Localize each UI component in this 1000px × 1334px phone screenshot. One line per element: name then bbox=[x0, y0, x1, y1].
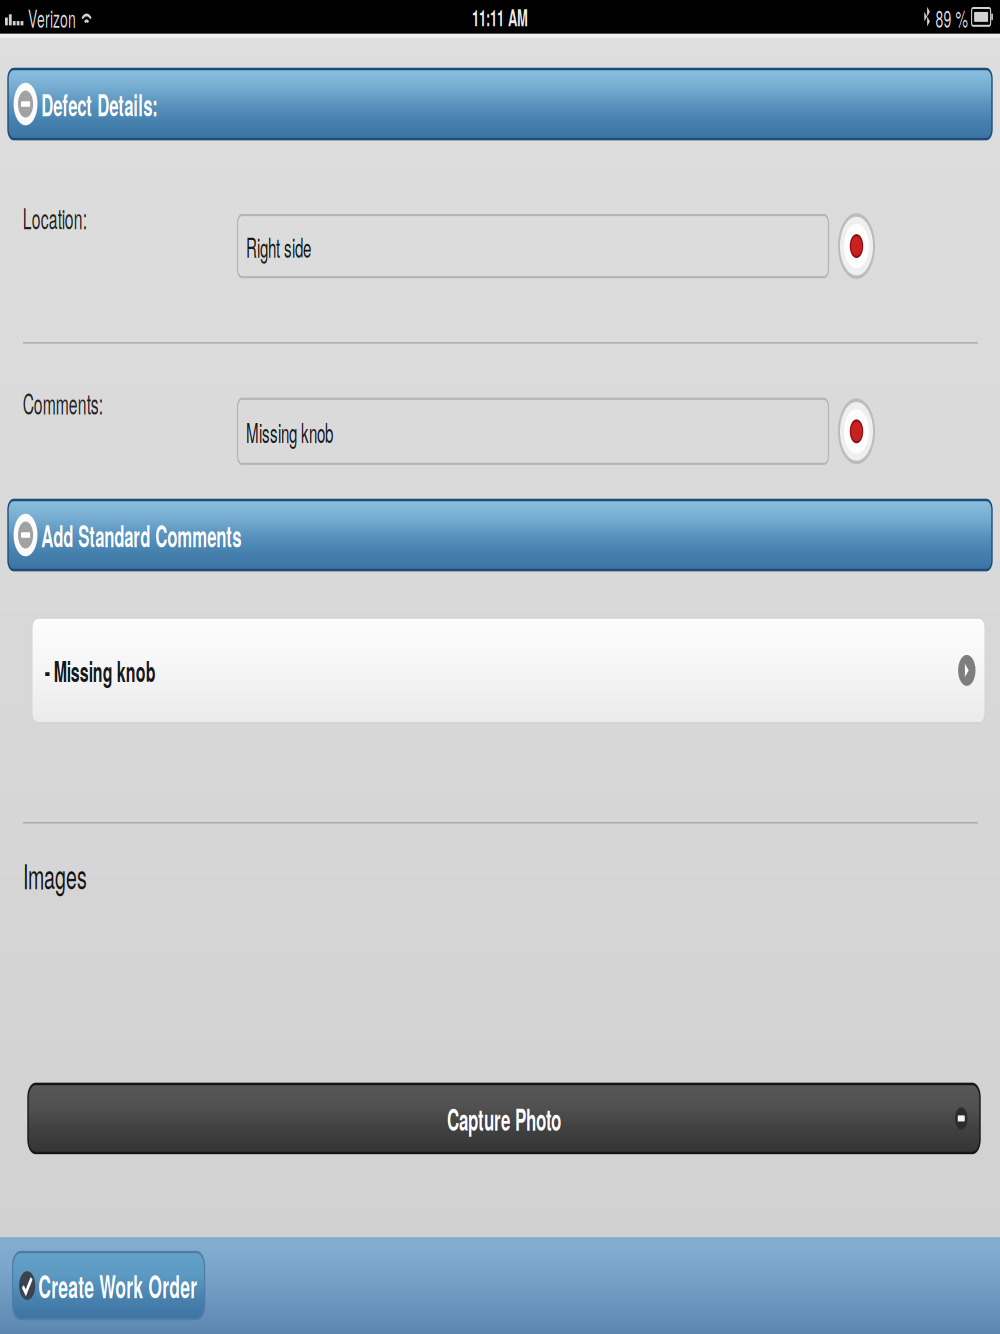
button[interactable]: Record Location bbox=[838, 120, 875, 157]
staticText: 89 % bbox=[935, 0, 967, 19]
button[interactable]: Record Comments bbox=[838, 224, 875, 261]
staticText: Defect Details: bbox=[41, 46, 158, 71]
staticText: Missing knob bbox=[246, 232, 333, 253]
button[interactable]: Capture Photo bbox=[28, 609, 980, 648]
button[interactable]: Defect Details: bbox=[8, 39, 992, 78]
button[interactable]: Create Work Order bbox=[13, 704, 205, 742]
staticText: Verizon bbox=[28, 0, 76, 19]
staticText: Create Work Order bbox=[38, 710, 197, 735]
staticText: Capture Photo bbox=[447, 617, 561, 641]
staticText: Location: bbox=[23, 111, 87, 133]
button[interactable]: - Missing knob bbox=[32, 347, 985, 406]
staticText: Right side bbox=[246, 127, 311, 149]
staticText: Images bbox=[23, 477, 87, 505]
staticText: Comments: bbox=[23, 215, 103, 237]
staticText: 11:11 AM bbox=[472, 0, 528, 19]
